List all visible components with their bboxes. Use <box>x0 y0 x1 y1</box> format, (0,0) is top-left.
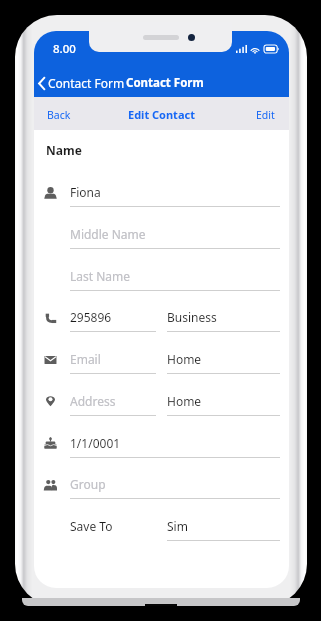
staticText: 8.00 <box>53 41 76 57</box>
button[interactable]: Sim <box>167 514 280 541</box>
staticText: Contact Form <box>126 75 204 91</box>
button[interactable]: Email <box>70 347 156 374</box>
button[interactable]: Back <box>34 71 204 95</box>
button[interactable]: Middle Name <box>70 222 280 249</box>
staticText: Save To <box>70 518 113 534</box>
staticText: Home <box>167 351 202 367</box>
button[interactable]: Back <box>40 97 77 130</box>
staticText: Middle Name <box>70 226 146 242</box>
staticText: Name <box>46 142 82 158</box>
staticText: Last Name <box>70 268 131 284</box>
staticText: Sim <box>167 518 188 534</box>
staticText: Email <box>70 351 101 367</box>
staticText: Contact Form <box>48 75 125 91</box>
button[interactable]: Edit <box>250 101 281 127</box>
button[interactable]: Edit Contact <box>122 100 201 127</box>
staticText: Home <box>167 393 202 409</box>
staticText: Back <box>47 108 71 122</box>
staticText: Fiona <box>70 184 101 200</box>
button[interactable]: Save To <box>70 514 156 541</box>
button[interactable]: Group <box>70 472 280 499</box>
staticText: 295896 <box>70 309 112 325</box>
button[interactable]: Business <box>167 305 280 332</box>
button[interactable]: Home <box>167 347 280 374</box>
staticText: Edit <box>256 108 275 122</box>
staticText: 1/1/0001 <box>70 435 121 451</box>
other: Back <box>34 71 48 95</box>
staticText: Address <box>70 393 116 409</box>
button[interactable]: Last Name <box>70 264 280 291</box>
staticText: Business <box>167 309 217 325</box>
button[interactable]: 295896 <box>70 305 156 332</box>
button[interactable]: Fiona <box>70 180 280 207</box>
staticText: Edit Contact <box>128 107 195 122</box>
button[interactable]: Home <box>167 389 280 416</box>
button[interactable]: Address <box>70 389 156 416</box>
button[interactable]: 1/1/0001 <box>70 431 280 458</box>
staticText: Group <box>70 476 106 492</box>
